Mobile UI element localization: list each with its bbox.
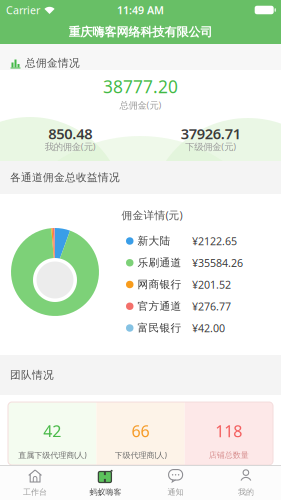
staticText: ¥42.00 bbox=[192, 321, 225, 335]
staticText: 蚂蚁嗨客 bbox=[89, 487, 121, 497]
staticText: ¥276.77 bbox=[192, 299, 231, 313]
staticText: 38777.20 bbox=[103, 75, 178, 98]
staticText: 佣金详情(元) bbox=[121, 208, 182, 222]
staticText: 下级佣金(元) bbox=[185, 140, 236, 153]
staticText: Carrier bbox=[6, 3, 40, 17]
staticText: 店铺总数量 bbox=[209, 450, 249, 460]
staticText: 66 bbox=[131, 420, 149, 442]
staticText: 我的 bbox=[238, 487, 254, 497]
staticText: 富民银行 bbox=[137, 321, 181, 334]
staticText: 新大陆 bbox=[137, 234, 170, 247]
staticText: 总佣金情况 bbox=[25, 56, 80, 69]
staticText: 850.48 bbox=[48, 124, 92, 143]
staticText: 直属下级代理商(人) bbox=[18, 450, 86, 460]
staticText: 工作台 bbox=[23, 487, 47, 497]
staticText: 下级代理商(人) bbox=[114, 450, 166, 460]
staticText: 网商银行 bbox=[137, 278, 181, 291]
staticText: 乐刷通道 bbox=[137, 256, 181, 269]
staticText: ¥201.52 bbox=[192, 277, 231, 292]
staticText: 总佣金(元) bbox=[119, 99, 161, 111]
staticText: 42 bbox=[43, 420, 61, 442]
staticText: 37926.71 bbox=[181, 124, 241, 143]
staticText: 各通道佣金总收益情况 bbox=[10, 171, 120, 184]
staticText: 重庆嗨客网络科技有限公司 bbox=[68, 25, 212, 39]
staticText: 官方通道 bbox=[137, 300, 181, 313]
staticText: ¥35584.26 bbox=[192, 256, 243, 270]
staticText: 我的佣金(元) bbox=[45, 140, 96, 153]
staticText: 团队情况 bbox=[10, 368, 54, 381]
staticText: 118 bbox=[215, 420, 242, 442]
staticText: 通知 bbox=[168, 487, 184, 497]
staticText: ¥2122.65 bbox=[192, 234, 237, 248]
staticText: 11:49 AM bbox=[117, 3, 164, 17]
